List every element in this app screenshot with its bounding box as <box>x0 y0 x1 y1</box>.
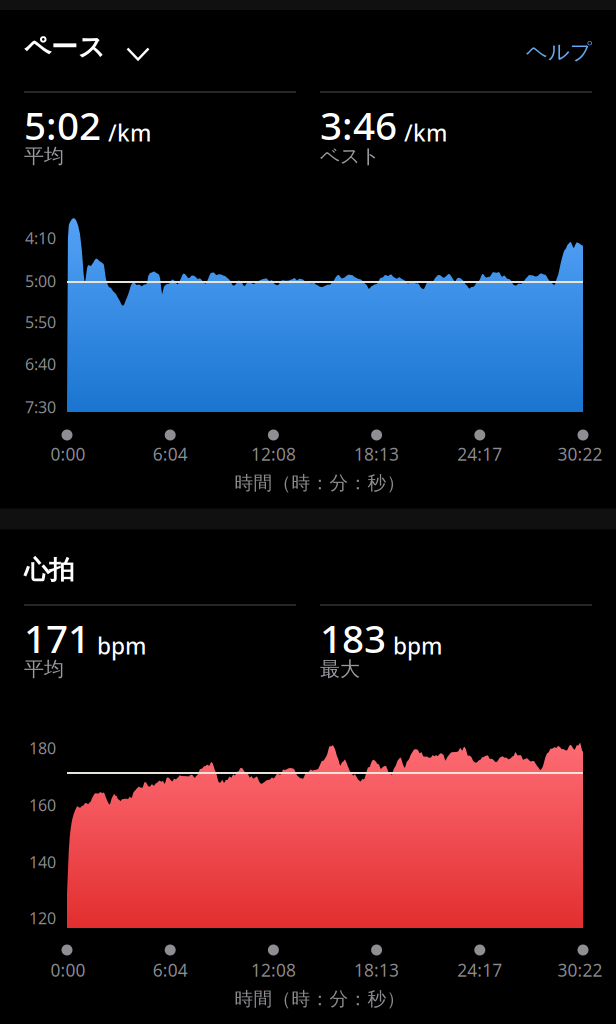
staticText: 7:30 <box>25 396 56 418</box>
staticText: bpm <box>393 631 442 661</box>
staticText: 0:00 <box>50 958 85 981</box>
staticText: 平均 <box>24 144 64 168</box>
staticText: 5:00 <box>25 270 56 292</box>
staticText: 12:08 <box>251 442 296 465</box>
staticText: 30:22 <box>557 442 602 465</box>
staticText: 24:17 <box>457 958 502 981</box>
staticText: 18:13 <box>354 958 399 981</box>
staticText: 160 <box>29 794 56 816</box>
staticText: 時間（時：分：秒） <box>234 471 405 494</box>
staticText: 6:04 <box>153 442 188 465</box>
staticText: /km <box>404 118 447 148</box>
staticText: 120 <box>29 907 56 929</box>
staticText: bpm <box>97 631 146 661</box>
staticText: 時間（時：分：秒） <box>234 987 405 1010</box>
staticText: ペース <box>24 31 105 63</box>
staticText: 平均 <box>24 657 64 681</box>
staticText: 18:13 <box>354 442 399 465</box>
staticText: 140 <box>29 851 56 873</box>
staticText: 4:10 <box>25 227 56 249</box>
staticText: 180 <box>29 737 56 759</box>
staticText: 0:00 <box>50 442 85 465</box>
button[interactable]: ペース <box>24 24 180 70</box>
staticText: 6:40 <box>25 353 56 375</box>
button[interactable]: ヘルプ <box>492 30 592 74</box>
staticText: 5:50 <box>25 311 56 333</box>
staticText: 6:04 <box>153 958 188 981</box>
staticText: ヘルプ <box>526 39 592 65</box>
staticText: 心拍 <box>24 554 74 585</box>
staticText: 5:02 <box>24 99 101 151</box>
staticText: 24:17 <box>457 442 502 465</box>
staticText: ベスト <box>320 144 380 168</box>
staticText: 3:46 <box>320 99 397 151</box>
staticText: 最大 <box>320 657 360 681</box>
staticText: /km <box>108 118 151 148</box>
staticText: 12:08 <box>251 958 296 981</box>
staticText: 171 <box>24 612 90 664</box>
staticText: 183 <box>320 612 386 664</box>
staticText: 30:22 <box>557 958 602 981</box>
